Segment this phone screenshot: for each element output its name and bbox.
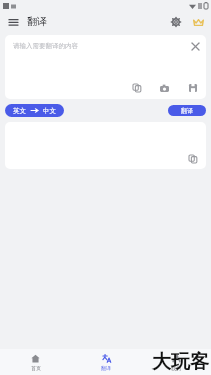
staticText: 翻译 xyxy=(27,15,47,28)
button[interactable]: Camera xyxy=(157,80,172,95)
staticText: 大玩客 xyxy=(152,350,209,374)
staticText: 首页 xyxy=(31,365,41,371)
button[interactable]: Gallery xyxy=(185,80,200,95)
button[interactable]: Clear xyxy=(188,39,202,53)
staticText: 我的 xyxy=(171,365,181,371)
staticText: 翻译 xyxy=(101,365,111,371)
button[interactable]: 翻译 xyxy=(168,105,206,116)
button[interactable]: Menu xyxy=(6,15,20,29)
staticText: 英文 xyxy=(13,107,26,115)
button[interactable]: Copy xyxy=(129,80,144,95)
button[interactable]: Settings xyxy=(168,14,184,30)
button[interactable]: Copy result xyxy=(186,152,200,166)
button[interactable]: 翻译 xyxy=(71,349,141,375)
button[interactable]: 我的 xyxy=(141,349,211,375)
button[interactable]: 英文 xyxy=(5,104,64,117)
button[interactable]: 首页 xyxy=(0,349,71,375)
button[interactable]: VIP xyxy=(190,14,206,30)
staticText: 翻译 xyxy=(181,107,193,115)
staticText: 中文 xyxy=(43,107,56,115)
button[interactable]: 请输入需要翻译的内容 xyxy=(5,35,206,99)
button[interactable]: Copy result xyxy=(5,122,206,169)
staticText: 请输入需要翻译的内容 xyxy=(13,42,78,50)
